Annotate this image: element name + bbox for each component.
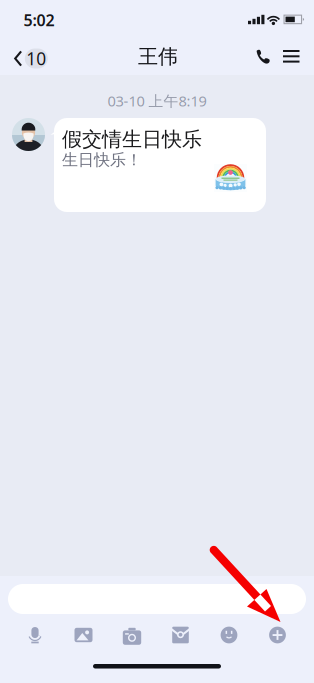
button[interactable]: Photos [66, 621, 100, 649]
button[interactable]: Stickers [212, 621, 246, 649]
button[interactable]: Menu [276, 40, 306, 73]
button[interactable]: More [260, 621, 294, 649]
button[interactable]: Gift [163, 621, 197, 649]
staticText: 10 [26, 47, 46, 70]
button[interactable]: Call [248, 40, 277, 73]
staticText: 王伟 [138, 44, 178, 69]
button[interactable]: Camera [115, 621, 149, 649]
staticText: 03-10 上午8:19 [107, 91, 206, 110]
staticText: 生日快乐！ [62, 150, 142, 170]
staticText: 假交情生日快乐 [62, 127, 202, 152]
staticText: 5:02 [23, 9, 54, 31]
button[interactable]: 10 [0, 40, 56, 76]
button[interactable]: Voice message [18, 621, 52, 649]
